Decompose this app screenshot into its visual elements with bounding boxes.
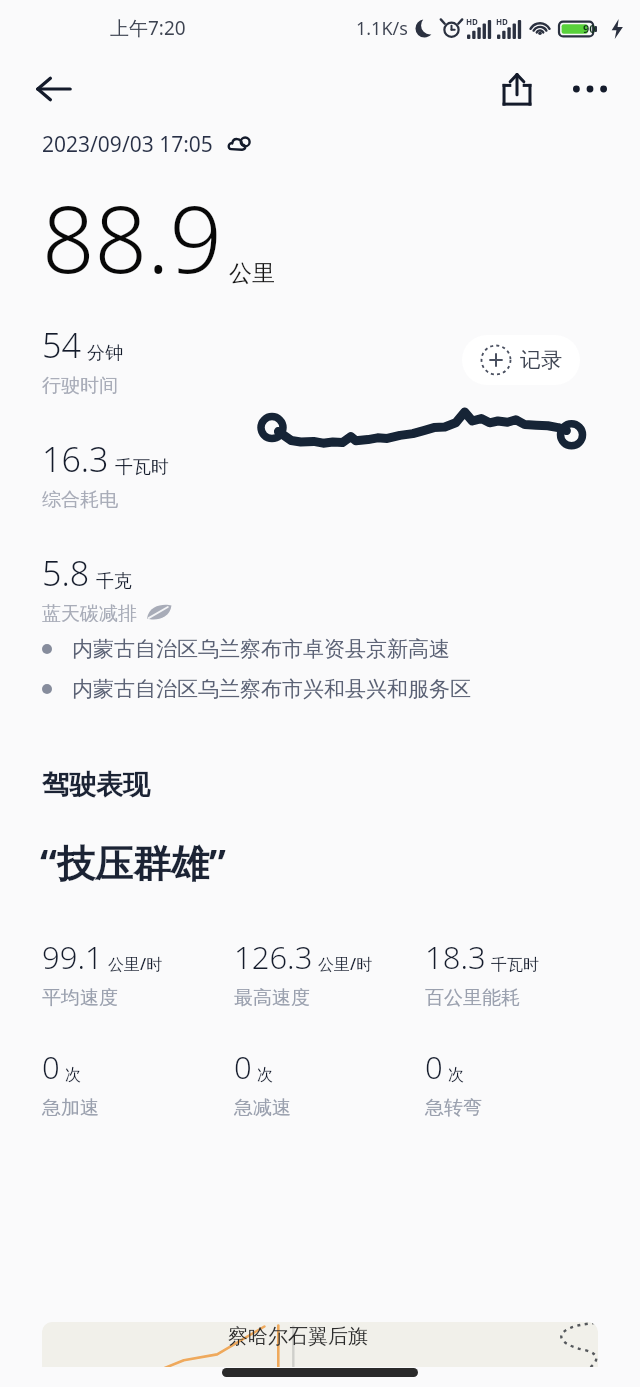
staticText: 千克: [96, 570, 132, 593]
button[interactable]: Map: [42, 1322, 598, 1367]
staticText: 5.8: [42, 550, 90, 596]
staticText: 内蒙古自治区乌兰察布市兴和县兴和服务区: [72, 676, 471, 702]
staticText: 急加速: [42, 1096, 99, 1120]
staticText: 内蒙古自治区乌兰察布市卓资县京新高速: [72, 636, 450, 662]
staticText: 分钟: [87, 342, 123, 365]
staticText: 急减速: [234, 1096, 291, 1120]
staticText: 99.1: [42, 936, 103, 978]
staticText: 16.3: [42, 436, 109, 482]
staticText: HD: [496, 16, 508, 27]
staticText: 驾驶表现: [42, 768, 150, 802]
staticText: 126.3: [234, 936, 313, 978]
staticText: 最高速度: [234, 986, 310, 1010]
button[interactable]: Back: [26, 61, 82, 117]
staticText: 察哈尔石翼后旗: [228, 1324, 368, 1349]
staticText: 18.3: [425, 936, 486, 978]
staticText: 行驶时间: [42, 374, 118, 398]
button[interactable]: More options: [562, 61, 618, 117]
staticText: 公里: [229, 259, 275, 288]
staticText: 0: [42, 1046, 60, 1088]
staticText: 公里/时: [108, 953, 163, 975]
staticText: 次: [448, 1065, 464, 1085]
staticText: 百公里能耗: [425, 986, 520, 1010]
staticText: HD: [466, 16, 478, 27]
staticText: 0: [425, 1046, 443, 1088]
staticText: 0: [234, 1046, 252, 1088]
staticText: 88.9: [42, 175, 223, 300]
staticText: 蓝天碳减排: [42, 602, 137, 622]
staticText: 平均速度: [42, 986, 118, 1010]
staticText: 2023/09/03 17:05: [42, 130, 213, 159]
staticText: 1.1K/s: [356, 16, 408, 41]
staticText: 急转弯: [425, 1096, 482, 1120]
staticText: 千瓦时: [115, 456, 169, 479]
staticText: “技压群雄”: [40, 836, 226, 888]
staticText: 次: [65, 1065, 81, 1085]
staticText: 54: [42, 322, 81, 368]
button[interactable]: 记录: [462, 335, 580, 385]
staticText: 综合耗电: [42, 488, 118, 512]
staticText: 千瓦时: [491, 955, 539, 975]
button[interactable]: Share: [488, 60, 546, 118]
staticText: 记录: [520, 347, 562, 373]
staticText: 公里/时: [318, 953, 373, 975]
staticText: 90: [583, 21, 596, 36]
staticText: 次: [257, 1065, 273, 1085]
staticText: 上午7:20: [110, 15, 186, 41]
